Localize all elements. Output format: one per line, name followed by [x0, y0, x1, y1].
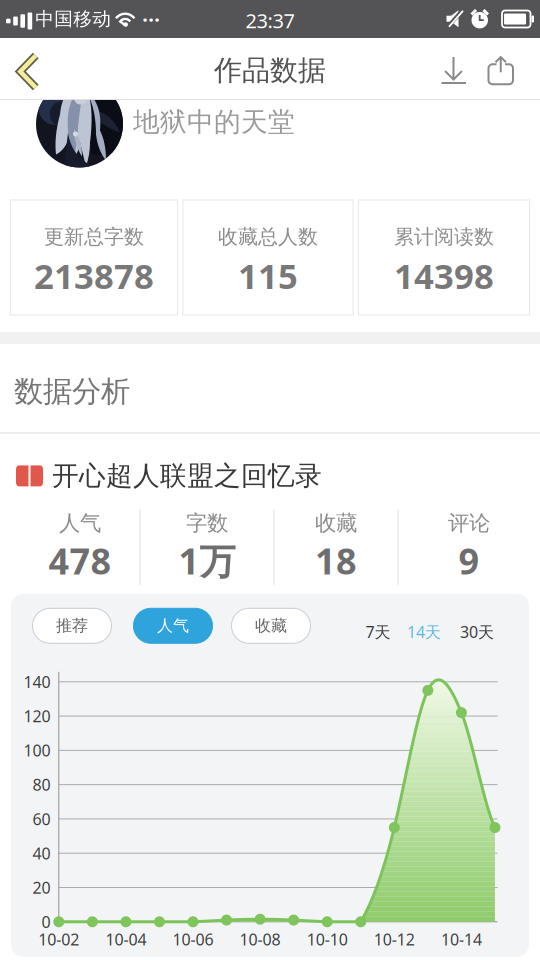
staticText: 10-12	[374, 929, 415, 950]
button[interactable]: Download	[432, 44, 476, 92]
staticText: 收藏	[315, 510, 357, 536]
button[interactable]: 评论	[398, 510, 539, 584]
staticText: 累计阅读数	[394, 224, 494, 249]
staticText: 478	[48, 537, 111, 584]
staticText: 开心超人联盟之回忆录	[52, 459, 322, 492]
button[interactable]: 收藏	[274, 510, 397, 584]
staticText: 60	[32, 808, 50, 829]
staticText: 1万	[178, 537, 235, 584]
staticText: 收藏总人数	[218, 224, 318, 249]
staticText: 23:37	[245, 7, 294, 34]
staticText: 10-14	[441, 929, 482, 950]
staticText: 推荐	[56, 616, 88, 636]
staticText: 作品数据	[214, 53, 326, 88]
button[interactable]: 收藏	[231, 608, 310, 643]
staticText: 213878	[34, 252, 154, 298]
button[interactable]: 14天	[407, 621, 441, 642]
staticText: 更新总字数	[44, 224, 144, 249]
staticText: 10-08	[240, 929, 281, 950]
staticText: 中国移动	[35, 7, 111, 30]
staticText: 人气	[157, 616, 189, 636]
staticText: 18	[315, 537, 357, 584]
staticText: 10-10	[307, 929, 348, 950]
button[interactable]: 字数	[140, 510, 273, 584]
staticText: 120	[23, 705, 50, 727]
button[interactable]: 累计阅读数	[358, 200, 529, 315]
staticText: 115	[238, 252, 298, 298]
staticText: 0	[41, 911, 50, 932]
button[interactable]: 更新总字数	[10, 200, 177, 315]
staticText: 80	[32, 774, 50, 795]
staticText: 7天	[365, 621, 390, 642]
staticText: 地狱中的天堂	[133, 106, 295, 138]
staticText: 10-04	[105, 929, 146, 950]
button[interactable]: Share	[479, 44, 523, 92]
staticText: 14天	[407, 621, 441, 642]
button[interactable]: 7天	[365, 621, 390, 642]
staticText: 30天	[460, 621, 494, 642]
staticText: 数据分析	[14, 373, 130, 409]
button[interactable]: 30天	[460, 621, 494, 642]
staticText: 评论	[448, 510, 490, 536]
staticText: 人气	[59, 510, 101, 536]
staticText: 10-02	[38, 929, 79, 950]
button[interactable]: 推荐	[32, 608, 111, 643]
button[interactable]: Back	[4, 42, 52, 94]
button[interactable]: 人气	[133, 608, 212, 643]
staticText: 100	[23, 740, 50, 761]
staticText: 140	[23, 671, 50, 692]
button[interactable]: 收藏总人数	[183, 200, 353, 315]
staticText: 字数	[186, 510, 228, 536]
staticText: 10-06	[172, 929, 213, 950]
staticText: 20	[32, 877, 50, 898]
staticText: ···	[142, 6, 160, 32]
button[interactable]: 人气	[0, 510, 139, 584]
staticText: 40	[32, 843, 50, 864]
staticText: 14398	[394, 252, 494, 298]
staticText: 收藏	[255, 616, 287, 636]
staticText: 9	[458, 537, 479, 584]
